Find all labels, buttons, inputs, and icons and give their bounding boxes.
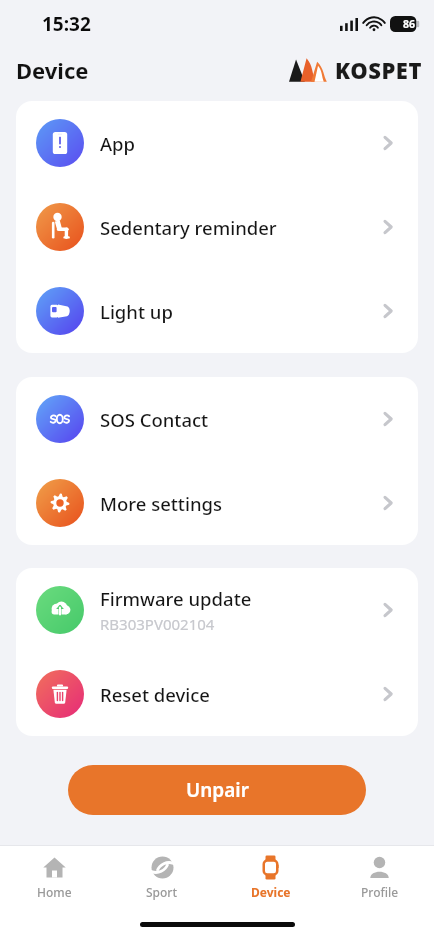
staticText: Reset device — [100, 682, 210, 707]
button[interactable]: Sedentary reminder — [16, 185, 418, 269]
button[interactable]: Profile — [325, 846, 434, 908]
staticText: Home — [37, 884, 72, 900]
staticText: 86 — [403, 17, 416, 31]
button[interactable]: Reset device — [16, 652, 418, 736]
staticText: Light up — [100, 299, 173, 324]
staticText: SOS Contact — [100, 407, 209, 432]
button[interactable]: More settings — [16, 461, 418, 545]
button[interactable]: Sport — [108, 846, 216, 908]
staticText: Device — [251, 884, 291, 900]
button[interactable]: Home — [0, 846, 108, 908]
staticText: Unpair — [186, 777, 249, 803]
button[interactable]: Unpair — [68, 765, 366, 815]
button[interactable]: Firmware update — [16, 568, 418, 652]
button[interactable]: SOS Contact — [16, 377, 418, 461]
staticText: RB303PV002104 — [100, 614, 215, 634]
staticText: Profile — [361, 884, 399, 900]
staticText: 15:32 — [42, 11, 91, 37]
button[interactable]: Light up — [16, 269, 418, 353]
staticText: Device — [16, 55, 89, 85]
button[interactable]: App — [16, 101, 418, 185]
staticText: Sport — [146, 884, 178, 900]
staticText: KOSPET — [335, 55, 422, 85]
button[interactable]: Device — [216, 846, 325, 908]
staticText: Sedentary reminder — [100, 215, 277, 240]
staticText: App — [100, 131, 136, 156]
staticText: More settings — [100, 491, 223, 516]
staticText: Firmware update — [100, 586, 252, 611]
